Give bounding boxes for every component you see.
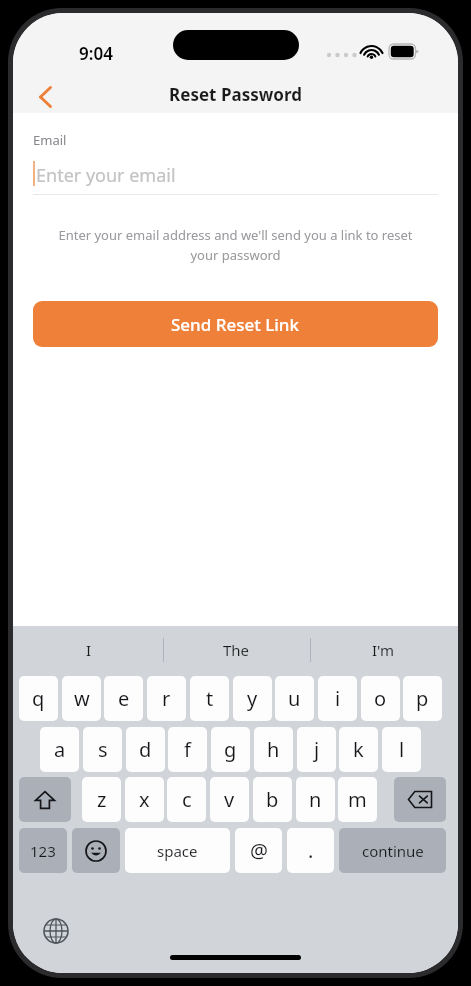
button[interactable]: j [297, 727, 336, 772]
button[interactable]: The [186, 634, 286, 666]
button[interactable]: w [62, 676, 101, 721]
button[interactable]: @ [235, 828, 282, 873]
button[interactable]: i [318, 676, 357, 721]
button[interactable]: e [104, 676, 143, 721]
button[interactable]: Back [23, 75, 67, 119]
button[interactable]: . [287, 828, 334, 873]
staticText: g [224, 736, 237, 763]
staticText: 9:04 [79, 42, 113, 65]
button[interactable]: k [339, 727, 378, 772]
button[interactable]: d [126, 727, 165, 772]
staticText: r [162, 685, 171, 712]
staticText: @ [250, 837, 268, 864]
button[interactable]: t [190, 676, 229, 721]
staticText: space [157, 841, 198, 861]
staticText: f [184, 736, 191, 763]
staticText: Enter your email [36, 163, 176, 188]
staticText: p [416, 685, 429, 712]
button[interactable]: Backspace [394, 777, 446, 822]
button[interactable]: m [338, 777, 377, 822]
button[interactable]: Shift [19, 777, 71, 822]
staticText: z [97, 786, 107, 813]
button[interactable]: b [253, 777, 292, 822]
button[interactable]: p [403, 676, 442, 721]
button[interactable]: 123 [19, 828, 67, 873]
button[interactable]: z [82, 777, 121, 822]
button[interactable]: g [211, 727, 250, 772]
staticText: i [335, 685, 341, 712]
staticText: y [247, 685, 258, 712]
staticText: s [98, 736, 108, 763]
staticText: l [399, 736, 405, 763]
button[interactable]: f [168, 727, 207, 772]
staticText: w [74, 685, 90, 712]
button[interactable]: u [275, 676, 314, 721]
staticText: The [223, 640, 250, 660]
button[interactable]: q [19, 676, 58, 721]
button[interactable]: space [125, 828, 230, 873]
button[interactable]: o [361, 676, 400, 721]
staticText: v [224, 786, 235, 813]
staticText: h [267, 736, 280, 763]
button[interactable]: l [382, 727, 421, 772]
button[interactable]: x [125, 777, 164, 822]
staticText: Email [33, 131, 67, 149]
staticText: Send Reset Link [171, 313, 300, 336]
button[interactable]: c [167, 777, 206, 822]
staticText: k [353, 736, 364, 763]
staticText: b [266, 786, 279, 813]
button[interactable]: Send Reset Link [33, 301, 438, 347]
staticText: j [314, 736, 320, 763]
staticText: t [206, 685, 214, 712]
staticText: o [374, 685, 387, 712]
staticText: q [32, 685, 45, 712]
staticText: . [308, 837, 314, 864]
staticText: 123 [30, 841, 56, 861]
staticText: m [348, 786, 367, 813]
staticText: c [182, 786, 192, 813]
button[interactable]: r [147, 676, 186, 721]
button[interactable]: h [254, 727, 293, 772]
staticText: Enter your email address and we'll send … [57, 226, 414, 264]
button[interactable]: Emoji [72, 828, 120, 873]
staticText: I [86, 640, 92, 660]
staticText: a [54, 736, 66, 763]
staticText: Reset Password [13, 83, 458, 106]
button[interactable]: continue [339, 828, 446, 873]
staticText: x [139, 786, 150, 813]
staticText: e [118, 685, 130, 712]
button[interactable]: y [233, 676, 272, 721]
button[interactable]: v [210, 777, 249, 822]
staticText: d [139, 736, 152, 763]
staticText: n [309, 786, 322, 813]
button[interactable]: s [83, 727, 122, 772]
staticText: u [288, 685, 301, 712]
button[interactable]: I'm [333, 634, 433, 666]
button[interactable]: I [39, 634, 139, 666]
staticText: continue [362, 841, 424, 861]
staticText: I'm [372, 640, 395, 660]
button[interactable]: Change keyboard [39, 914, 73, 948]
button[interactable]: n [296, 777, 335, 822]
button[interactable]: a [40, 727, 79, 772]
